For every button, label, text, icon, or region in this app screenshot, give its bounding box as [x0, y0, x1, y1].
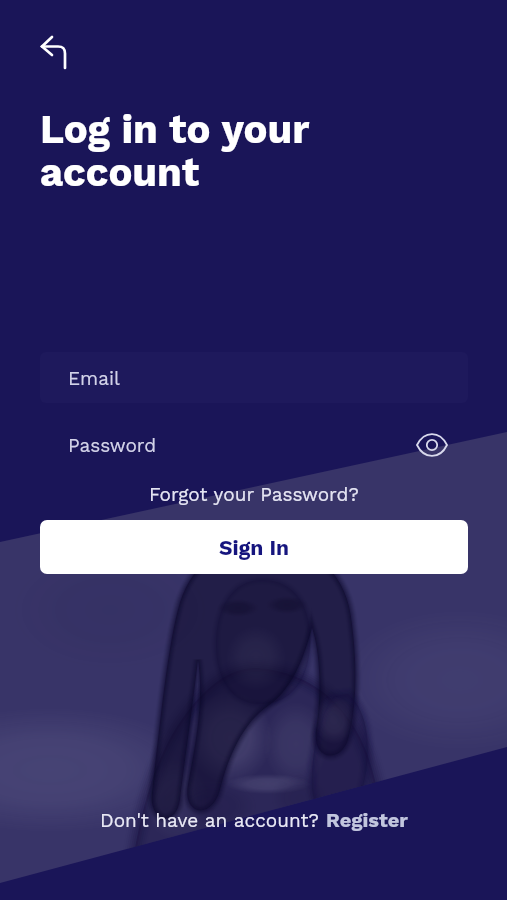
- button[interactable]: Show password: [415, 428, 449, 462]
- button[interactable]: Sign In: [40, 520, 468, 574]
- button[interactable]: Register: [326, 808, 408, 831]
- button[interactable]: Email: [40, 352, 468, 403]
- staticText: Email: [68, 367, 120, 389]
- staticText: Password: [68, 434, 157, 456]
- button[interactable]: Password: [40, 419, 468, 470]
- staticText: Log in to your account: [40, 106, 310, 196]
- button[interactable]: Back: [30, 26, 78, 74]
- staticText: Don't have an account?: [100, 809, 326, 831]
- button[interactable]: Forgot your Password?: [145, 479, 363, 509]
- staticText: Sign In: [219, 535, 290, 560]
